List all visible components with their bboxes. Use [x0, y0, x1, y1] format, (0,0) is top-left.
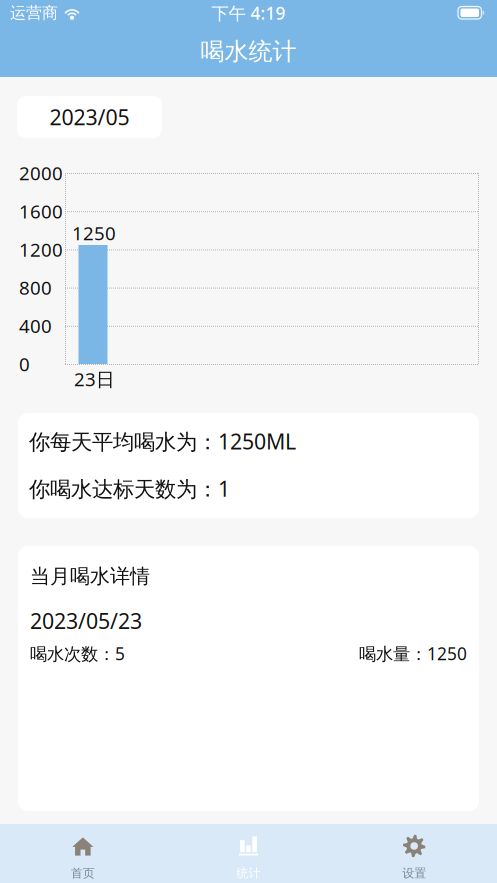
staticText: 2023/05 — [49, 103, 129, 131]
staticText: 设置 — [402, 866, 426, 881]
button[interactable]: 2023/05 — [17, 96, 162, 138]
staticText: 23日 — [74, 367, 115, 391]
staticText: 下午 4:19 — [211, 1, 285, 24]
staticText: 统计 — [236, 866, 260, 881]
staticText: 运营商 — [10, 3, 58, 23]
staticText: 喝水量：1250 — [359, 642, 467, 665]
staticText: 当月喝水详情 — [30, 564, 150, 589]
staticText: 你每天平均喝水为：1250ML — [29, 427, 296, 455]
button[interactable]: 设置 — [331, 824, 497, 883]
staticText: 1600 — [19, 199, 63, 224]
button[interactable]: 统计 — [166, 824, 331, 883]
staticText: 0 — [19, 352, 30, 376]
staticText: 喝水次数：5 — [30, 642, 125, 665]
staticText: 1250 — [72, 221, 116, 245]
staticText: 1200 — [19, 237, 63, 262]
staticText: 喝水统计 — [200, 37, 296, 66]
staticText: 400 — [19, 313, 52, 338]
staticText: 你喝水达标天数为：1 — [29, 474, 230, 503]
staticText: 800 — [19, 275, 52, 300]
staticText: 2023/05/23 — [30, 607, 142, 635]
staticText: 2000 — [19, 161, 63, 185]
button[interactable]: 首页 — [0, 824, 166, 883]
staticText: 首页 — [71, 866, 95, 881]
